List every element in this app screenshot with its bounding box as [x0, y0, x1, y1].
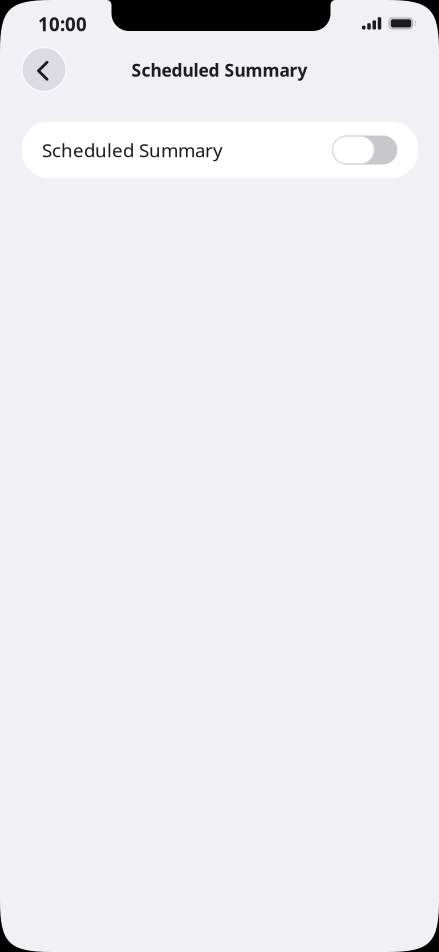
- staticText: Scheduled Summary: [131, 58, 307, 81]
- staticText: Scheduled Summary: [42, 138, 223, 162]
- button[interactable]: Scheduled Summary: [22, 122, 418, 178]
- staticText: 10:00: [38, 12, 87, 36]
- button[interactable]: Back: [21, 46, 67, 92]
